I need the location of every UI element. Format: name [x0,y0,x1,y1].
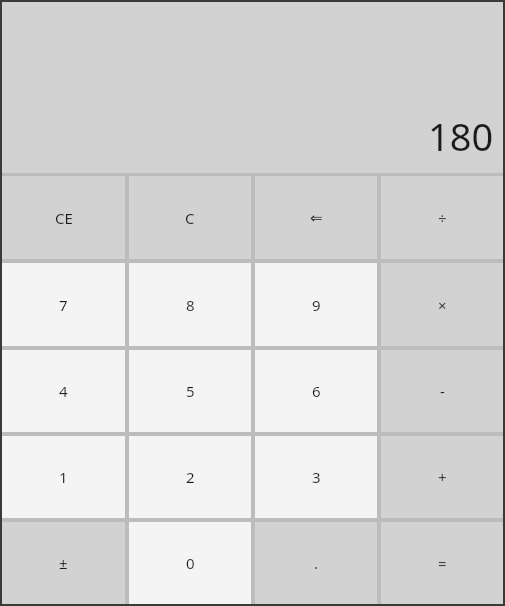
staticText: ÷ [438,208,447,228]
staticText: CE [55,208,73,228]
staticText: ± [59,553,68,573]
staticText: = [438,553,447,573]
staticText: 7 [59,295,68,315]
staticText: 1 [59,467,68,487]
button[interactable]: C [129,176,251,259]
button[interactable]: 0 [129,522,251,604]
button[interactable]: 1 [2,436,125,518]
staticText: 3 [312,467,321,487]
button[interactable]: = [381,522,503,604]
button[interactable]: 8 [129,263,251,346]
staticText: + [438,467,447,487]
staticText: C [185,208,195,228]
staticText: 0 [186,553,195,573]
staticText: 8 [186,295,195,315]
button[interactable]: 7 [2,263,125,346]
button[interactable]: 9 [255,263,377,346]
button[interactable]: 6 [255,350,377,432]
button[interactable]: + [381,436,503,518]
staticText: . [314,553,319,573]
button[interactable]: 5 [129,350,251,432]
staticText: - [440,381,445,401]
button[interactable]: - [381,350,503,432]
staticText: 9 [312,295,321,315]
staticText: 4 [59,381,68,401]
staticText: 5 [186,381,195,401]
button[interactable]: ⇐ [255,176,377,259]
button[interactable]: 2 [129,436,251,518]
button[interactable]: 3 [255,436,377,518]
staticText: 180 [428,110,494,162]
button[interactable]: × [381,263,503,346]
staticText: × [438,295,447,315]
button[interactable]: ÷ [381,176,503,259]
button[interactable]: 4 [2,350,125,432]
staticText: 6 [312,381,321,401]
button[interactable]: CE [2,176,125,259]
staticText: 2 [186,467,195,487]
button[interactable]: ± [2,522,125,604]
staticText: ⇐ [310,209,323,226]
